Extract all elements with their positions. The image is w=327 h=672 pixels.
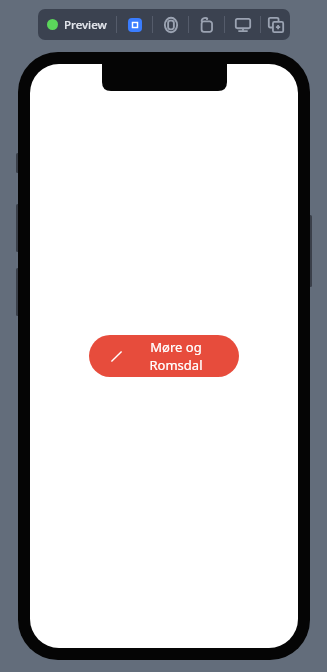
button[interactable]: Copy preview bbox=[261, 9, 290, 40]
button[interactable]: Run on device bbox=[225, 9, 260, 40]
button[interactable]: Preview bbox=[38, 9, 116, 40]
button[interactable]: Animation preview bbox=[189, 9, 224, 40]
button[interactable]: Inspect UI bbox=[153, 9, 188, 40]
staticText: Møre og Romsdal bbox=[133, 338, 219, 374]
button[interactable]: Interactive mode bbox=[117, 9, 152, 40]
staticText: Preview bbox=[64, 17, 107, 33]
button[interactable]: Møre og Romsdal bbox=[89, 335, 239, 377]
